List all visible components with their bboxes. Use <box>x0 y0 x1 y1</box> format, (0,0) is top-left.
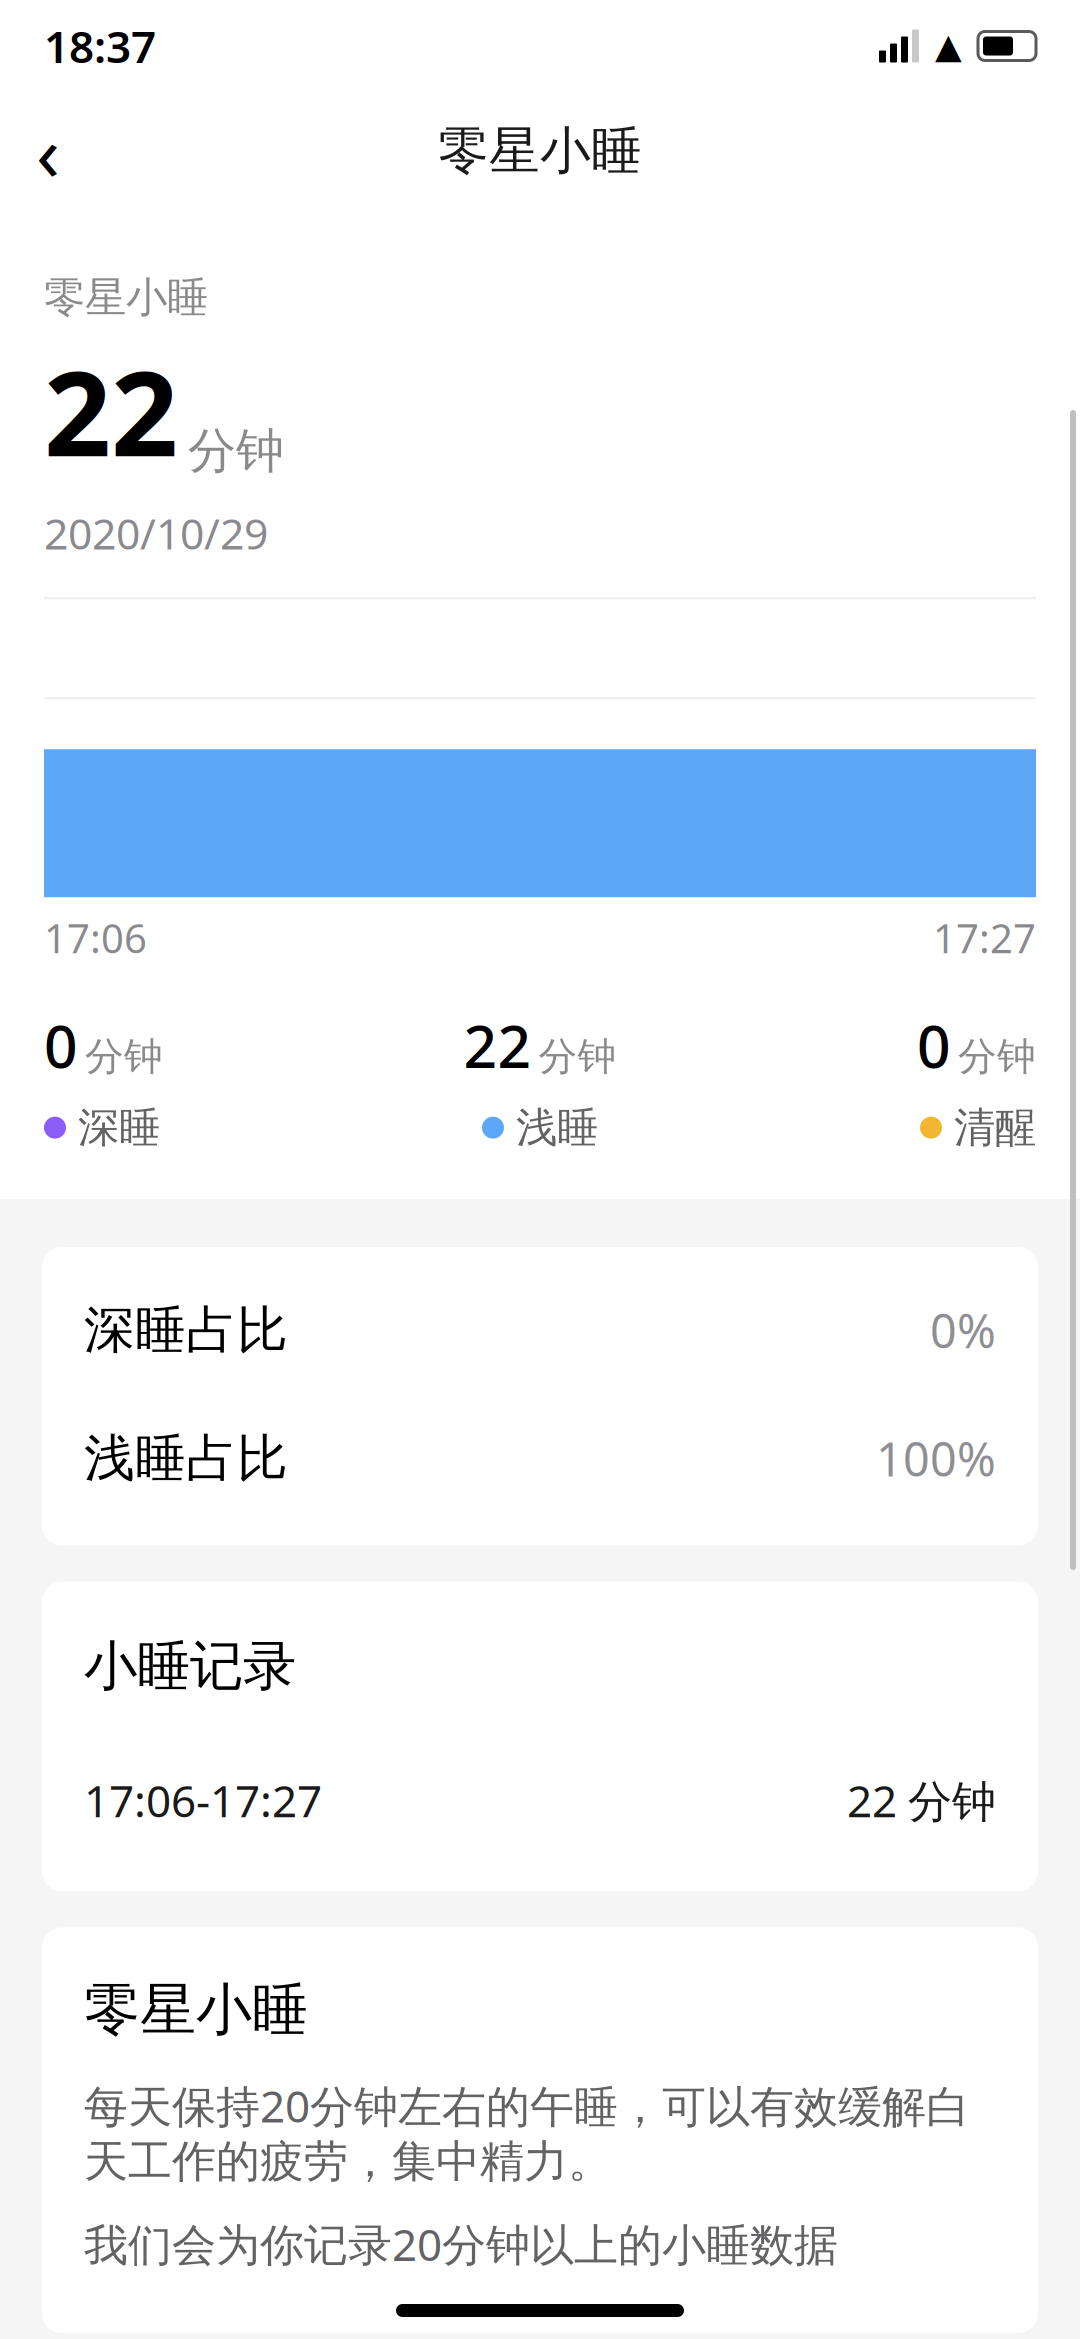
staticText: 100% <box>876 1427 996 1489</box>
staticText: ‹ <box>36 100 60 202</box>
button[interactable]: Back <box>0 103 96 199</box>
staticText: 零星小睡 <box>44 272 208 323</box>
staticText: 我们会为你记录20分钟以上的小睡数据 <box>84 2215 838 2273</box>
staticText: 浅睡 <box>516 1102 598 1153</box>
staticText: 0% <box>930 1299 996 1361</box>
staticText: 17:06-17:27 <box>84 1771 322 1829</box>
staticText: 分钟 <box>958 1033 1036 1080</box>
staticText: 0 <box>917 1006 951 1084</box>
staticText: 零星小睡 <box>438 120 642 182</box>
staticText: 17:27 <box>933 911 1036 964</box>
staticText: 分钟 <box>538 1033 616 1080</box>
staticText: ▲ <box>935 26 962 66</box>
staticText: 22 <box>44 333 178 489</box>
staticText: 0 <box>44 1006 78 1084</box>
staticText: 零星小睡 <box>84 1975 308 2044</box>
staticText: 浅睡占比 <box>84 1427 288 1489</box>
staticText: 小睡记录 <box>84 1633 296 1699</box>
staticText: 22 分钟 <box>847 1771 996 1829</box>
staticText: 分钟 <box>188 422 284 481</box>
staticText: 22 <box>463 1006 531 1084</box>
staticText: 清醒 <box>954 1102 1036 1153</box>
staticText: 18:37 <box>44 17 156 75</box>
staticText: 分钟 <box>85 1033 163 1080</box>
staticText: 每天保持20分钟左右的午睡，可以有效缓解白天工作的疲劳，集中精力。 <box>84 2076 970 2189</box>
staticText: 2020/10/29 <box>44 505 268 561</box>
staticText: 深睡 <box>78 1102 160 1153</box>
staticText: 深睡占比 <box>84 1299 288 1361</box>
staticText: 17:06 <box>44 911 147 964</box>
